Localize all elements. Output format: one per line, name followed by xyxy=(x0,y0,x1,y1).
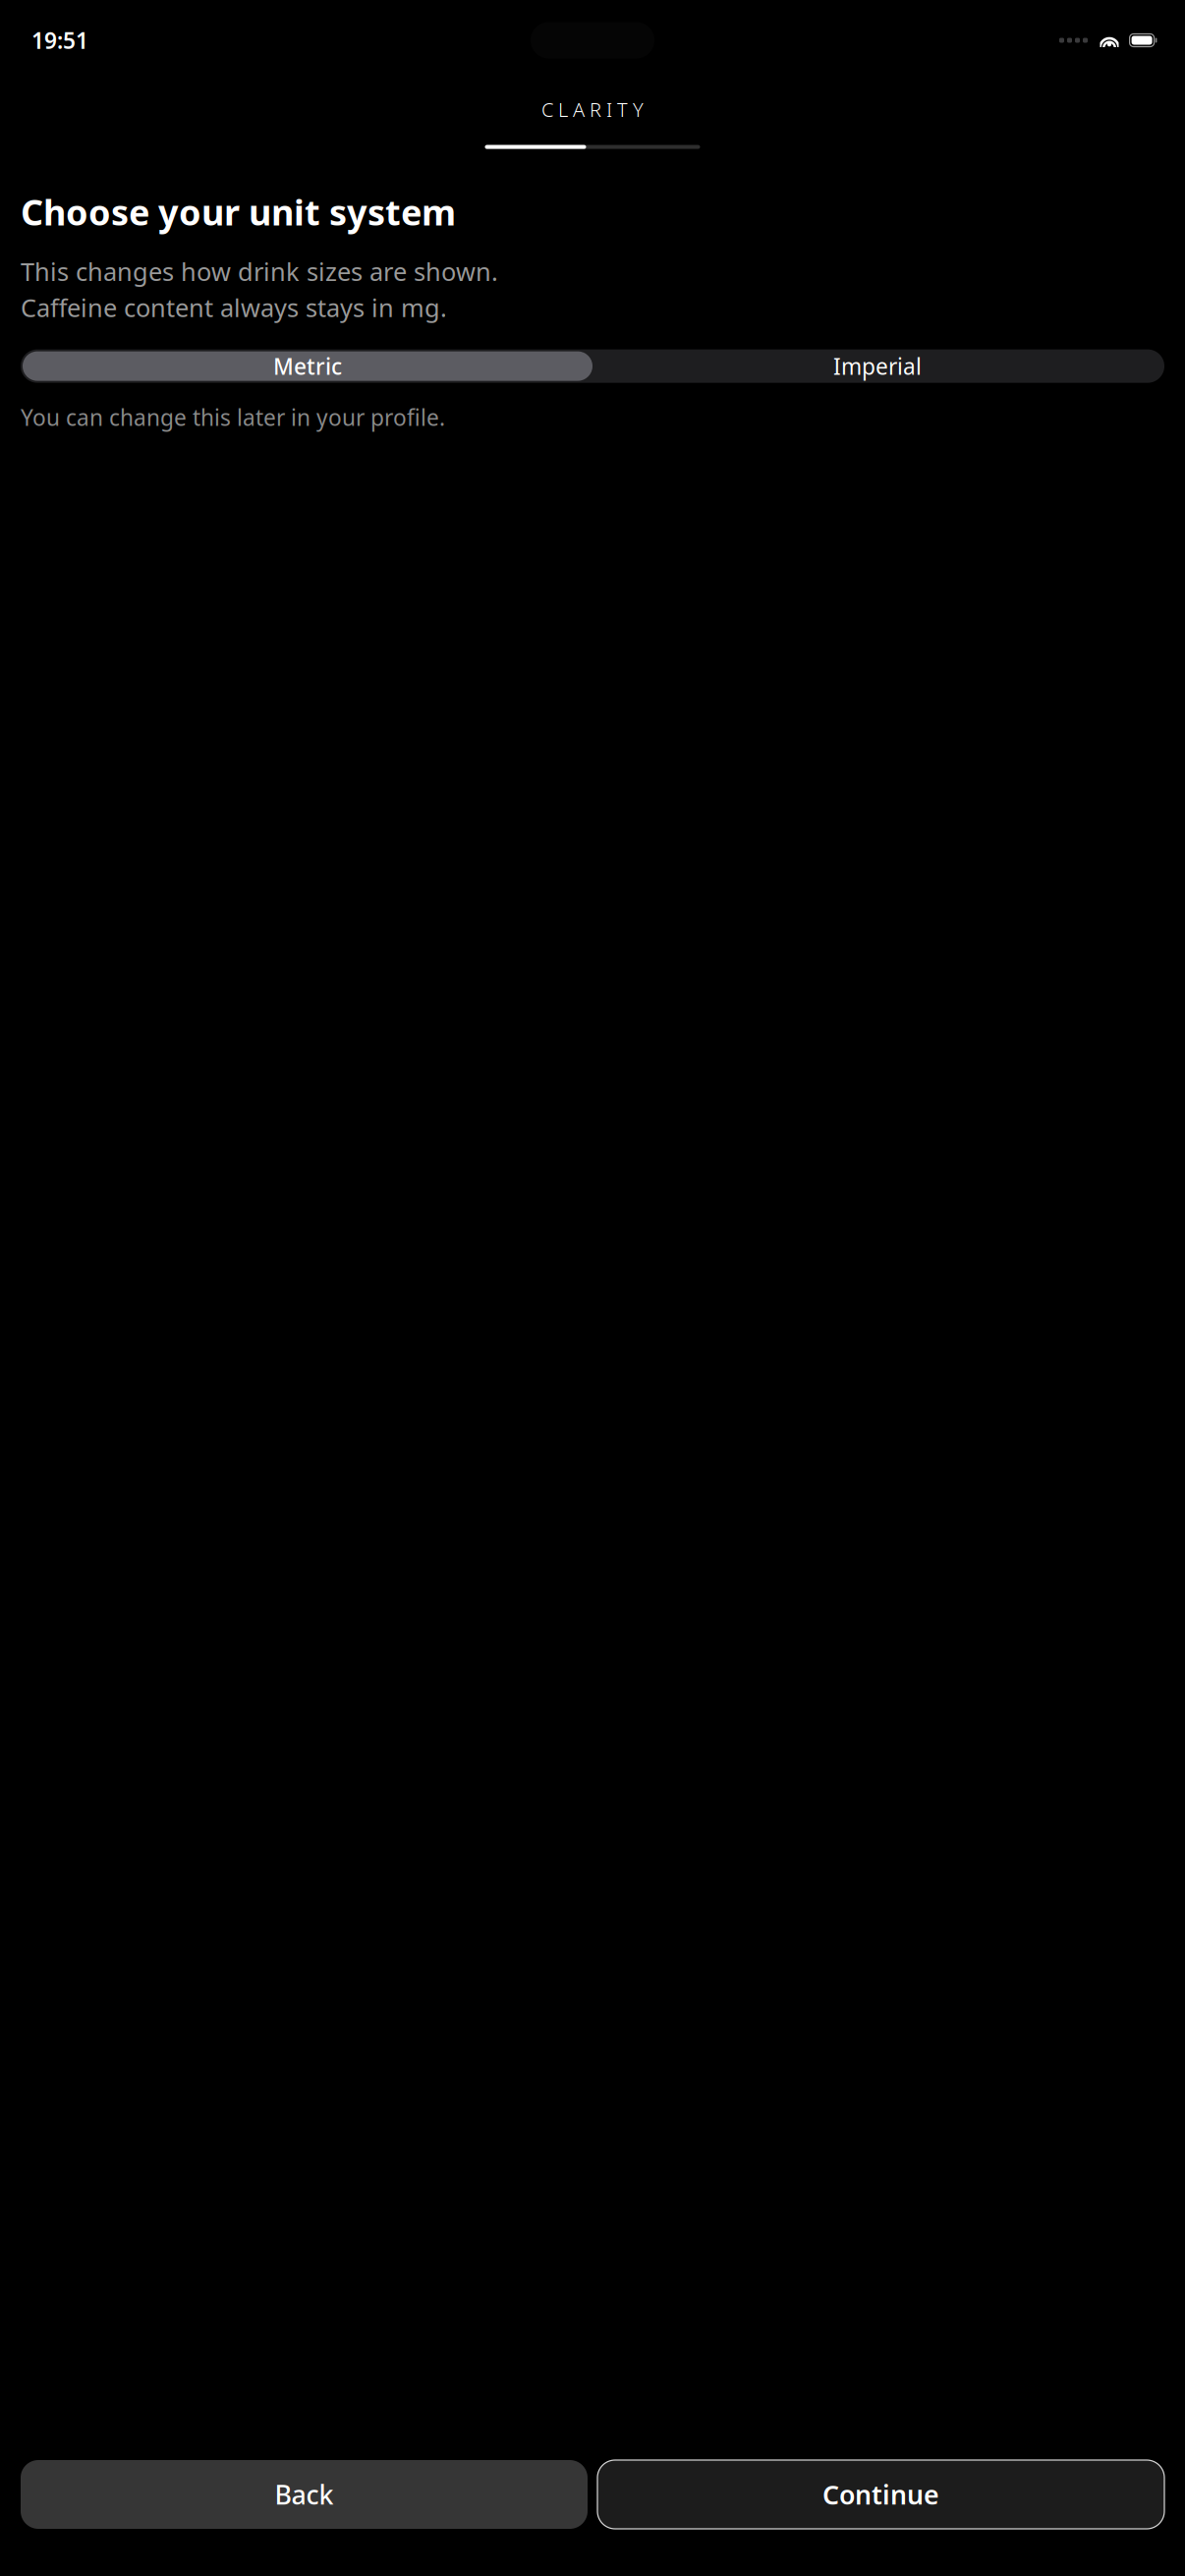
staticText: This changes how drink sizes are shown. xyxy=(21,255,498,288)
button[interactable]: Continue xyxy=(597,2460,1164,2529)
staticText: Caffeine content always stays in mg. xyxy=(21,291,447,324)
button[interactable]: Metric xyxy=(23,351,592,381)
staticText: Continue xyxy=(822,2477,939,2512)
staticText: Metric xyxy=(273,351,342,381)
staticText: C L A R I T Y xyxy=(541,96,644,122)
staticText: 19:51 xyxy=(31,25,88,55)
staticText: You can change this later in your profil… xyxy=(21,402,445,432)
button[interactable]: Imperial xyxy=(592,351,1162,381)
button[interactable]: Back xyxy=(21,2460,588,2529)
staticText: Imperial xyxy=(833,351,922,381)
staticText: Choose your unit system xyxy=(21,188,456,235)
staticText: Back xyxy=(275,2477,334,2512)
